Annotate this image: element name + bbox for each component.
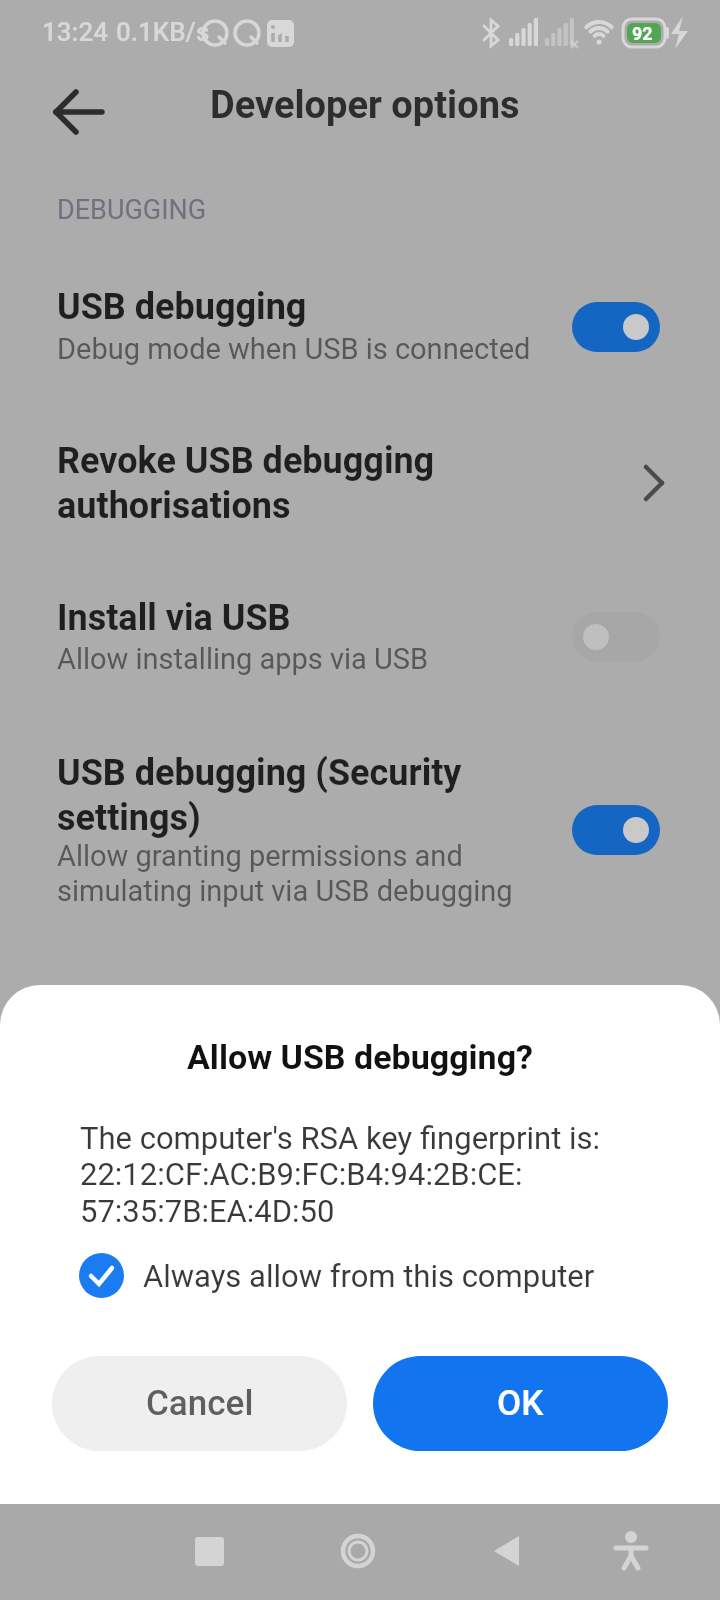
button[interactable] [540, 1504, 720, 1600]
button[interactable] [360, 1504, 540, 1600]
staticText: 0.1KB/s [116, 17, 210, 47]
staticText: Install via USB [57, 597, 291, 639]
button[interactable] [0, 435, 720, 535]
staticText: OK [497, 1383, 544, 1424]
staticText: Developer options [210, 83, 520, 128]
staticText: 92 [632, 23, 653, 44]
staticText: Allow granting permissions and simulatin… [57, 839, 513, 908]
button[interactable]: Cancel [52, 1356, 347, 1451]
staticText: Cancel [146, 1383, 254, 1424]
button[interactable] [572, 612, 660, 662]
button[interactable] [180, 1504, 360, 1600]
button[interactable]: OK [373, 1356, 668, 1451]
staticText: Debug mode when USB is connected [57, 332, 531, 366]
button[interactable] [572, 302, 660, 352]
staticText: DEBUGGING [57, 194, 207, 226]
staticText: 13:24 [42, 17, 109, 47]
button[interactable] [0, 590, 720, 690]
button[interactable] [0, 275, 720, 380]
staticText: USB debugging [57, 286, 307, 328]
staticText: Revoke USB debugging authorisations [57, 440, 435, 527]
staticText: Allow USB debugging? [0, 1037, 720, 1077]
button[interactable] [572, 805, 660, 855]
button[interactable] [0, 745, 720, 915]
staticText: Always allow from this computer [143, 1258, 595, 1294]
button[interactable] [40, 82, 116, 142]
button[interactable]: Always allow from this computer [79, 1253, 595, 1298]
staticText: USB debugging (Security settings) [57, 752, 462, 839]
staticText: Allow installing apps via USB [57, 642, 429, 676]
staticText: The computer's RSA key fingerprint is: 2… [80, 1120, 601, 1230]
